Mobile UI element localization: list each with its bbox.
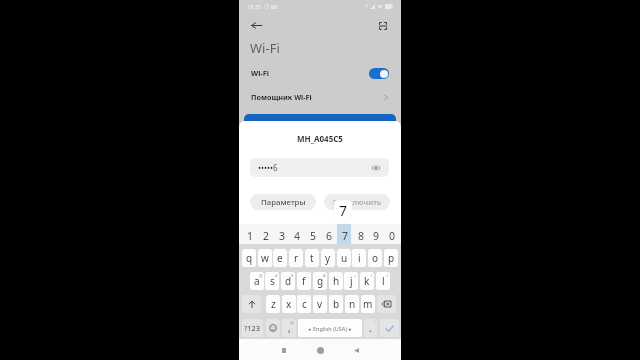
staticText: 4: [294, 229, 301, 243]
button[interactable]: 9: [369, 226, 383, 246]
button[interactable]: f: [297, 272, 311, 290]
staticText: ,: [288, 321, 291, 335]
staticText: u: [341, 251, 348, 265]
staticText: @: [259, 273, 263, 278]
button[interactable]: a: [250, 272, 264, 290]
button[interactable]: l: [376, 272, 390, 290]
staticText: c: [302, 297, 307, 311]
staticText: (: [371, 273, 373, 278]
button[interactable]: 5: [306, 226, 320, 246]
button[interactable]: Home: [309, 341, 331, 359]
staticText: +: [354, 273, 357, 278]
staticText: q: [246, 251, 253, 265]
staticText: b: [333, 297, 340, 311]
staticText: &: [323, 273, 326, 278]
staticText: Параметры: [261, 197, 306, 208]
button[interactable]: Помощник Wi-Fi: [239, 87, 401, 107]
button[interactable]: Show password: [370, 162, 381, 173]
button[interactable]: i: [352, 249, 366, 267]
button[interactable]: Параметры: [250, 194, 316, 210]
button[interactable]: q: [242, 249, 256, 267]
staticText: d: [285, 274, 292, 288]
staticText: z: [271, 297, 276, 311]
staticText: o: [372, 251, 379, 265]
button[interactable]: 4: [290, 226, 304, 246]
button[interactable]: j: [344, 272, 358, 290]
button[interactable]: Enter: [380, 319, 399, 337]
button[interactable]: 1: [243, 226, 257, 246]
button[interactable]: t: [305, 249, 319, 267]
staticText: ◂: [308, 326, 311, 332]
staticText: p: [388, 251, 395, 265]
button[interactable]: u: [337, 249, 351, 267]
button[interactable]: Back: [247, 16, 265, 34]
button[interactable]: b: [329, 295, 343, 313]
staticText: 18:35: [247, 3, 262, 10]
staticText: $: [291, 273, 294, 278]
staticText: English (USA): [313, 325, 347, 332]
button[interactable]: c: [297, 295, 311, 313]
staticText: 0: [389, 229, 396, 243]
staticText: MH_A045C5: [297, 133, 343, 144]
staticText: ): [387, 273, 389, 278]
button[interactable]: Shift: [242, 295, 261, 313]
staticText: 2: [263, 229, 270, 243]
staticText: _: [308, 273, 310, 278]
button[interactable]: 2: [259, 226, 273, 246]
staticText: n: [349, 297, 356, 311]
button[interactable]: 8: [354, 226, 368, 246]
button[interactable]: n: [345, 295, 359, 313]
button[interactable]: Back: [345, 341, 367, 359]
button[interactable]: e: [273, 249, 287, 267]
staticText: k: [364, 274, 370, 288]
button[interactable]: .: [364, 319, 377, 337]
button[interactable]: s: [265, 272, 279, 290]
staticText: -: [340, 273, 342, 278]
button[interactable]: •••••6: [250, 158, 389, 177]
button[interactable]: Wi-Fi: [239, 63, 401, 83]
button[interactable]: Подключить: [324, 194, 390, 210]
staticText: t: [310, 251, 314, 265]
button[interactable]: g: [313, 272, 327, 290]
button[interactable]: p: [384, 249, 398, 267]
staticText: e: [277, 251, 283, 265]
button[interactable]: v: [313, 295, 327, 313]
staticText: Wi-Fi: [250, 39, 280, 57]
staticText: •••••6: [258, 162, 278, 173]
staticText: 7: [339, 201, 348, 220]
button[interactable]: w: [258, 249, 272, 267]
staticText: ": [374, 320, 376, 325]
staticText: 9: [373, 229, 380, 243]
staticText: y: [325, 251, 331, 265]
button[interactable]: 3: [275, 226, 289, 246]
staticText: 1: [247, 229, 254, 243]
staticText: #: [275, 273, 278, 278]
button[interactable]: Recent apps: [273, 341, 295, 359]
staticText: j: [350, 274, 353, 288]
button[interactable]: h: [329, 272, 343, 290]
staticText: Подключить: [333, 197, 382, 208]
staticText: v: [317, 297, 323, 311]
staticText: x: [286, 297, 292, 311]
button[interactable]: 6: [322, 226, 336, 246]
button[interactable]: Emoji: [266, 319, 280, 337]
button[interactable]: m: [361, 295, 375, 313]
button[interactable]: r: [289, 249, 303, 267]
button[interactable]: y: [321, 249, 335, 267]
button[interactable]: x: [282, 295, 296, 313]
button[interactable]: ?123: [242, 319, 263, 337]
button[interactable]: 7: [338, 226, 352, 246]
button[interactable]: d: [281, 272, 295, 290]
button[interactable]: z: [266, 295, 280, 313]
staticText: h: [333, 274, 340, 288]
staticText: ▸: [349, 326, 352, 332]
button[interactable]: Scan QR code: [374, 17, 392, 35]
button[interactable]: 0: [385, 226, 399, 246]
button[interactable]: ,: [282, 319, 296, 337]
button[interactable]: Space: [298, 319, 362, 337]
button[interactable]: o: [368, 249, 382, 267]
button[interactable]: k: [360, 272, 374, 290]
staticText: Помощник Wi-Fi: [251, 92, 312, 102]
button[interactable]: Backspace: [377, 295, 396, 313]
staticText: a: [254, 274, 260, 288]
